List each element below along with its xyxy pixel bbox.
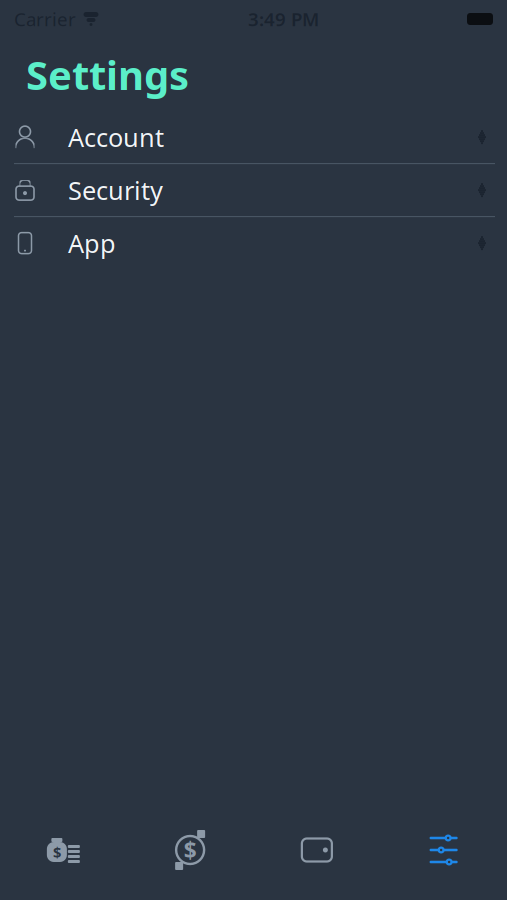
staticText: Security	[68, 173, 163, 207]
button[interactable]: App	[0, 217, 507, 270]
staticText: $	[184, 835, 197, 865]
staticText: 3:49 PM	[248, 7, 319, 31]
button[interactable]: Exchange	[127, 818, 254, 882]
staticText: Carrier	[14, 7, 76, 31]
staticText: $	[53, 842, 61, 862]
button[interactable]: Account	[0, 111, 507, 164]
button[interactable]: Income	[0, 818, 127, 882]
staticText: Account	[68, 120, 164, 154]
staticText: App	[68, 226, 116, 260]
staticText: Settings	[26, 48, 189, 101]
button[interactable]: Wallet	[253, 818, 380, 882]
button[interactable]: Settings	[380, 818, 507, 882]
button[interactable]: Security	[0, 164, 507, 217]
